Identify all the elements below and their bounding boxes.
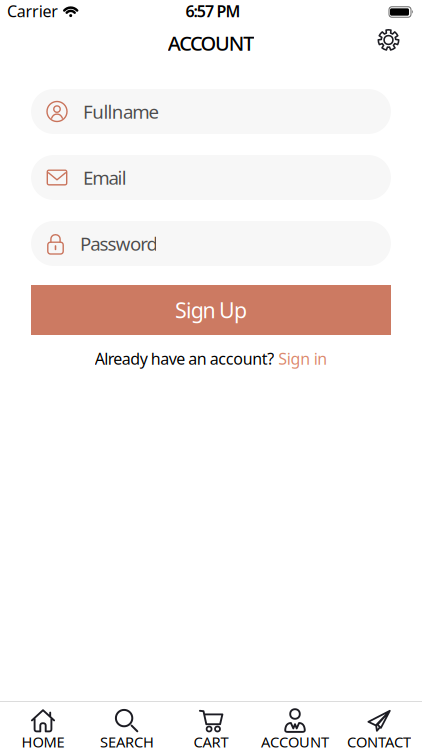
staticText: HOME <box>21 732 64 750</box>
button[interactable]: Settings <box>378 29 399 50</box>
staticText: Sign in <box>278 348 327 369</box>
staticText: Sign Up <box>175 296 247 324</box>
button[interactable]: SEARCH <box>85 709 169 750</box>
button[interactable]: Sign Up <box>31 285 391 335</box>
button[interactable]: Sign in <box>278 348 327 369</box>
staticText: Email <box>83 165 127 190</box>
staticText: CONTACT <box>347 732 411 750</box>
staticText: 6:57 PM <box>185 0 241 22</box>
staticText: SEARCH <box>100 732 154 750</box>
button[interactable]: HOME <box>1 709 85 750</box>
button[interactable]: ACCOUNT <box>253 709 337 750</box>
staticText: CART <box>193 732 228 750</box>
staticText: ACCOUNT <box>168 30 254 56</box>
staticText: Fullname <box>83 99 159 124</box>
staticText: Password <box>80 231 157 256</box>
staticText: Carrier <box>7 0 58 22</box>
staticText: Already have an account? <box>95 348 274 369</box>
button[interactable]: CONTACT <box>337 709 421 750</box>
button[interactable]: CART <box>169 709 253 750</box>
staticText: ACCOUNT <box>261 732 329 750</box>
